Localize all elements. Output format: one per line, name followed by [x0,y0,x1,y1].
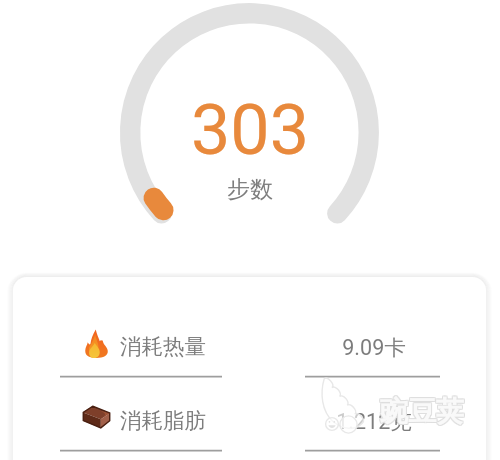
button[interactable]: 消耗脂肪 [13,376,486,450]
staticText: 豌豆荚 [379,394,463,429]
staticText: 消耗脂肪 [120,407,206,434]
staticText: 9.09卡 [342,334,406,361]
button[interactable]: 步数 303 [120,2,380,224]
staticText: 豌豆荚 [380,395,464,430]
button[interactable]: 消耗热量 [13,302,486,376]
staticText: 豌豆荚 [381,393,465,428]
staticText: 豌豆荚 [380,394,464,429]
staticText: 303 [191,89,310,161]
staticText: 豌豆荚 [381,395,465,430]
staticText: 豌豆荚 [380,393,464,428]
staticText: 豌豆荚 [381,394,465,429]
staticText: 1.212克 [336,408,412,435]
staticText: 步数 [227,175,273,204]
staticText: 豌豆荚 [379,395,463,430]
staticText: 消耗热量 [120,333,206,360]
staticText: 豌豆荚 [379,393,463,428]
